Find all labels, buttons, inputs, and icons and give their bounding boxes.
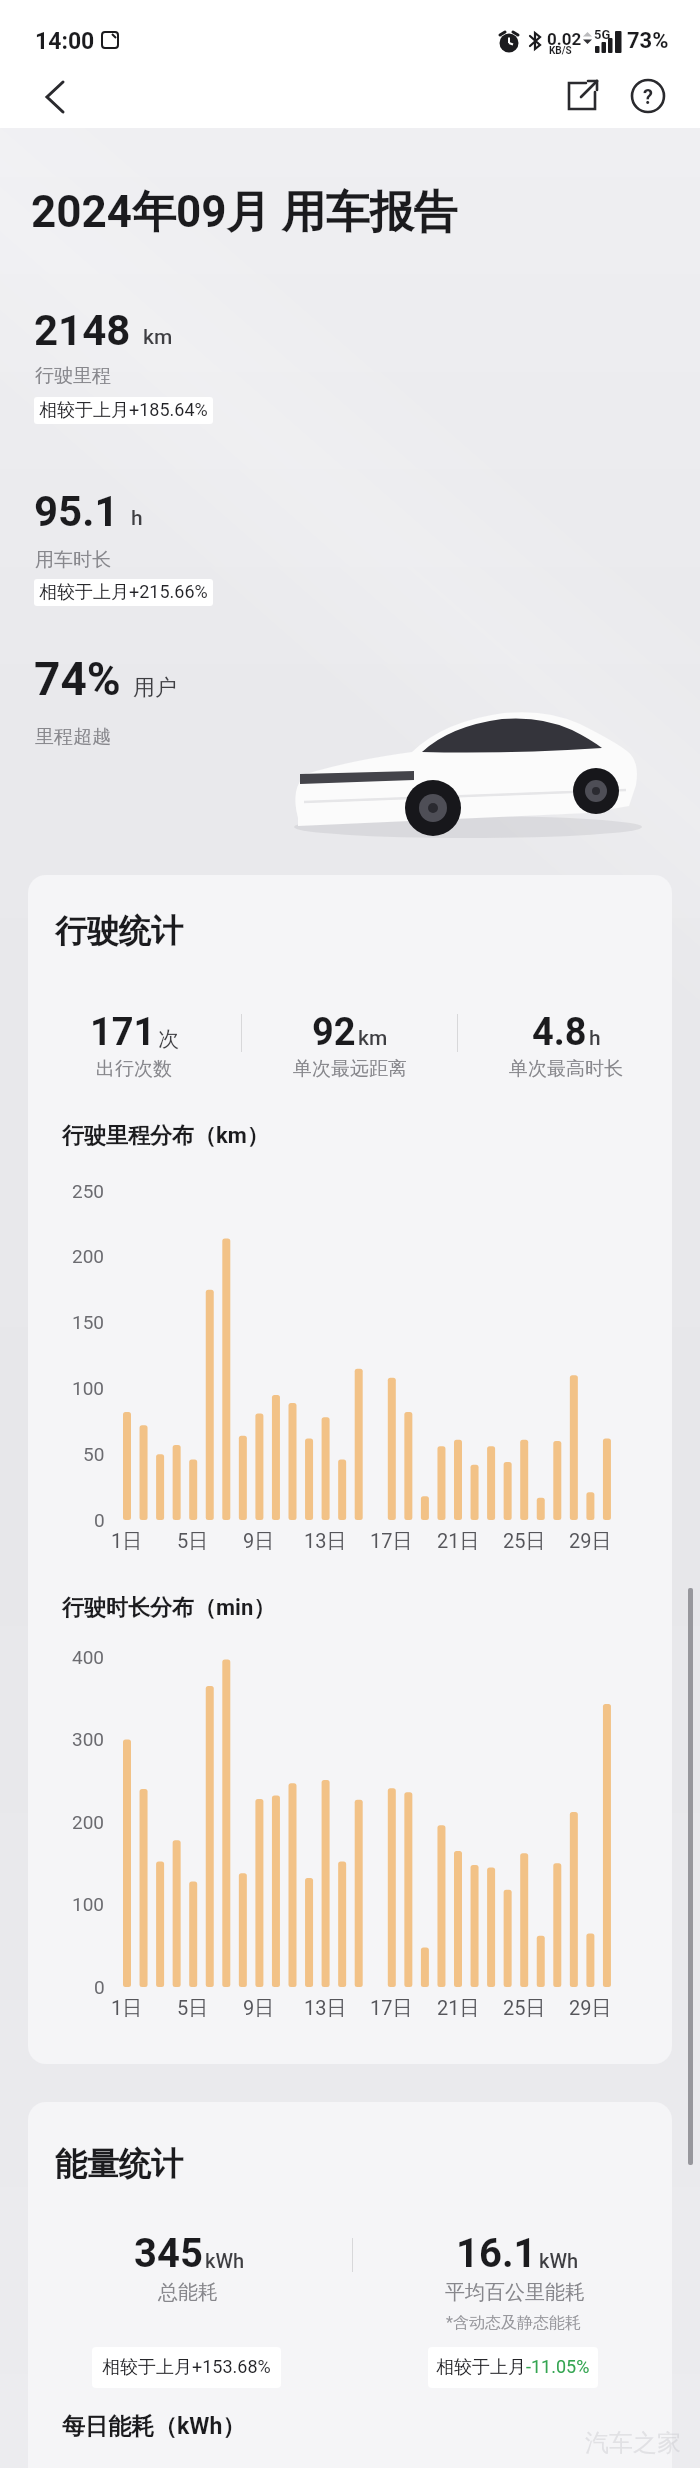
staticText: 21日 (437, 1529, 480, 1554)
button[interactable]: 相较于上月+185.64% (34, 397, 213, 424)
staticText: 平均百公里能耗 (445, 2280, 585, 2305)
staticText: 相较于上月+185.64% (39, 399, 208, 422)
staticText: 345 (134, 2230, 203, 2277)
staticText: 行驶里程 (35, 364, 111, 388)
staticText: 14:00 (35, 28, 95, 55)
staticText: 200 (72, 1811, 105, 1833)
staticText: 250 (72, 1180, 105, 1202)
staticText: 25日 (503, 1996, 546, 2021)
staticText: 73% (627, 28, 669, 54)
staticText: 16.1 (456, 2230, 537, 2277)
staticText: 相较于上月+215.66% (39, 581, 208, 604)
staticText: 25日 (503, 1529, 546, 1554)
staticText: 用车时长 (35, 548, 111, 572)
staticText: 21日 (437, 1996, 480, 2021)
staticText: KB/S (549, 45, 572, 57)
staticText: 次 (158, 1026, 179, 1052)
staticText: 400 (72, 1646, 105, 1668)
staticText: 里程超越 (35, 725, 111, 749)
staticText: ? (643, 85, 653, 108)
staticText: kWh (539, 2249, 579, 2272)
staticText: 100 (72, 1377, 105, 1399)
button[interactable]: 相较于上月+153.68% (92, 2347, 281, 2388)
staticText: 92 (312, 1010, 356, 1055)
staticText: 2024年09月 用车报告 (31, 185, 458, 240)
staticText: km (143, 325, 173, 350)
staticText: 17日 (370, 1529, 413, 1554)
staticText: 100 (72, 1893, 105, 1915)
button[interactable]: 相较于上月+215.66% (34, 579, 213, 606)
staticText: 13日 (304, 1996, 347, 2021)
staticText: 5日 (177, 1996, 209, 2021)
staticText: 200 (72, 1245, 105, 1267)
staticText: 4.8 (532, 1010, 587, 1055)
button[interactable]: 相较于上月-11.05% (428, 2347, 598, 2388)
staticText: 0 (94, 1976, 105, 1998)
button[interactable]: ? (626, 74, 670, 118)
staticText: 95.1 (34, 487, 119, 536)
staticText: h (131, 506, 143, 531)
staticText: 0 (94, 1509, 105, 1531)
staticText: 29日 (569, 1996, 612, 2021)
staticText: 9日 (243, 1996, 275, 2021)
staticText: 5G (594, 27, 611, 42)
staticText: 0.02 (547, 29, 582, 49)
staticText: 29日 (569, 1529, 612, 1554)
staticText: 9日 (243, 1529, 275, 1554)
staticText: 行驶统计 (55, 911, 183, 951)
button[interactable] (34, 75, 78, 119)
staticText: 171 (90, 1010, 156, 1055)
staticText: 1日 (111, 1996, 143, 2021)
staticText: km (358, 1026, 388, 1051)
staticText: 1日 (111, 1529, 143, 1554)
staticText: 相较于上月+153.68% (102, 2356, 271, 2379)
staticText: 相较于上月-11.05% (436, 2356, 590, 2379)
staticText: *含动态及静态能耗 (446, 2313, 581, 2333)
button[interactable] (560, 74, 604, 118)
staticText: 74% (34, 652, 121, 706)
staticText: 17日 (370, 1996, 413, 2021)
staticText: 5日 (177, 1529, 209, 1554)
staticText: 300 (72, 1728, 105, 1750)
staticText: 150 (72, 1311, 105, 1333)
staticText: kWh (205, 2249, 245, 2272)
staticText: 50 (83, 1443, 105, 1465)
staticText: 行驶时长分布（min） (62, 1594, 276, 1622)
staticText: 2148 (34, 306, 131, 355)
staticText: 汽车之家 (585, 2428, 681, 2458)
staticText: 总能耗 (158, 2280, 218, 2305)
staticText: 单次最高时长 (509, 1057, 623, 1081)
staticText: 行驶里程分布（km） (62, 1122, 269, 1150)
staticText: 每日能耗（kWh） (62, 2412, 246, 2441)
staticText: 单次最远距离 (293, 1057, 407, 1081)
staticText: h (589, 1026, 601, 1051)
staticText: 13日 (304, 1529, 347, 1554)
staticText: 能量统计 (55, 2144, 183, 2184)
staticText: 出行次数 (96, 1057, 172, 1081)
staticText: 用户 (133, 674, 177, 702)
